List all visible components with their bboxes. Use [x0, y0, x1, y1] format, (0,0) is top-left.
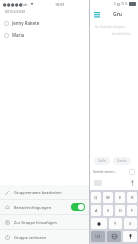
staticText: Hallo	[98, 159, 106, 163]
button[interactable]: Benachrichtigungen	[0, 200, 89, 214]
button[interactable]: Y	[109, 218, 122, 229]
staticText: Zur Gruppe hinzufügen	[14, 220, 57, 225]
button[interactable]: Hallo	[94, 157, 110, 165]
button[interactable]: D	[115, 205, 125, 216]
button[interactable]: Danke	[113, 157, 131, 165]
staticText: du wirst hin…	[112, 32, 133, 36]
button[interactable]: Maria	[0, 29, 89, 41]
staticText: Gruppenname bearbeiten	[14, 190, 62, 195]
staticText: 18:09	[55, 2, 65, 7]
staticText: Jenny Rakete	[12, 20, 40, 26]
staticText: S	[107, 208, 110, 213]
button[interactable]: F	[127, 205, 137, 216]
staticText: 75 %	[121, 2, 128, 6]
button[interactable]: Q	[91, 192, 101, 203]
staticText: Sende einen…	[93, 169, 117, 174]
button[interactable]: S	[103, 205, 113, 216]
staticText: Danke	[117, 159, 127, 163]
button[interactable]: X	[124, 218, 137, 229]
button[interactable]: 123	[91, 231, 105, 242]
button[interactable]: E	[115, 192, 125, 203]
button[interactable]: A	[91, 205, 101, 216]
staticText: E	[119, 195, 122, 200]
button[interactable]: W	[103, 192, 113, 203]
staticText: Gruppe verlassen	[14, 235, 47, 240]
button[interactable]: Zur Gruppe hinzufügen	[0, 215, 89, 229]
button[interactable]	[91, 218, 107, 229]
button[interactable]: Menü	[93, 11, 100, 18]
staticText: A	[95, 208, 98, 213]
staticText: Q	[94, 195, 98, 200]
staticText: Gru	[113, 11, 122, 18]
button[interactable]: Senden	[129, 169, 135, 175]
staticText: o2.de	[19, 3, 28, 7]
staticText: X	[129, 221, 132, 226]
staticText: W	[106, 195, 110, 200]
button[interactable]: Emoji	[107, 231, 121, 242]
button[interactable]: Mikrofon	[131, 180, 134, 186]
staticText: Maria	[12, 32, 25, 38]
staticText: D	[119, 208, 122, 213]
staticText: Benachrichtigungen	[14, 205, 52, 210]
button[interactable]: Gruppe verlassen	[0, 230, 89, 244]
button[interactable]: Gruppenname bearbeiten	[0, 185, 89, 199]
staticText: 123	[95, 235, 101, 239]
staticText: Y	[114, 221, 117, 226]
staticText: 4	[114, 2, 116, 6]
button[interactable]: Jenny Rakete	[0, 17, 89, 29]
staticText: F	[131, 208, 134, 213]
button[interactable]: Mikrofon	[123, 231, 137, 242]
staticText: MITGLIEDER	[5, 10, 26, 14]
button[interactable]: R	[127, 192, 137, 203]
staticText: R	[131, 195, 134, 200]
staticText: Du hast das Gesprä…	[95, 25, 127, 29]
